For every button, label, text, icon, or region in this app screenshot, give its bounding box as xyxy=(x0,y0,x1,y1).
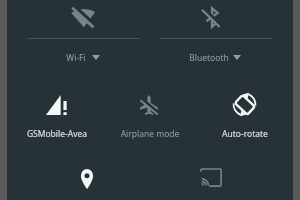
staticText: Auto-rotate xyxy=(205,128,285,140)
staticText: Wi-Fi xyxy=(48,52,104,64)
button[interactable]: Cast screen xyxy=(164,150,259,200)
staticText: Bluetooth xyxy=(181,52,237,64)
button[interactable] xyxy=(102,74,197,144)
button[interactable] xyxy=(153,0,293,68)
staticText: GSMobile-Avea xyxy=(17,128,97,140)
button[interactable] xyxy=(7,0,147,68)
button[interactable] xyxy=(197,74,293,144)
staticText: Airplane mode xyxy=(110,128,190,140)
button[interactable]: Location xyxy=(40,150,135,200)
button[interactable] xyxy=(7,74,102,144)
